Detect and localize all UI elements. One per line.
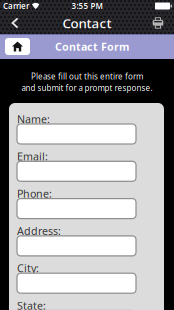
button[interactable]: Home (5, 38, 30, 55)
staticText: Carrier (3, 1, 29, 11)
staticText: Contact (62, 14, 111, 32)
staticText: Please fill out this entire form (31, 71, 143, 82)
staticText: Address: (17, 224, 61, 238)
staticText: Phone: (17, 186, 52, 201)
staticText: City: (17, 261, 39, 275)
staticText: State: (17, 298, 46, 310)
button[interactable]: Back (3, 12, 27, 34)
staticText: 3:55 PM (71, 1, 102, 11)
staticText: and submit for a prompt response. (21, 83, 152, 93)
staticText: Email: (17, 149, 48, 163)
staticText: Name: (17, 112, 50, 126)
staticText: Contact Form (55, 39, 129, 54)
button[interactable]: Print (146, 12, 170, 34)
